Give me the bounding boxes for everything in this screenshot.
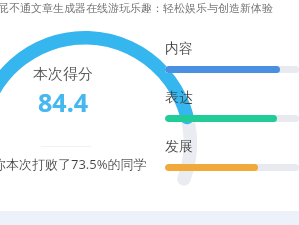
other: Score gauge 84.4 bbox=[0, 31, 151, 143]
button[interactable]: 内容 bbox=[165, 40, 299, 73]
button[interactable]: 表达 bbox=[165, 89, 299, 122]
staticText: 本次得分 bbox=[33, 65, 93, 84]
staticText: 84.4 bbox=[38, 85, 88, 119]
staticText: 内容 bbox=[165, 40, 193, 58]
staticText: 表达 bbox=[165, 89, 193, 107]
staticText: 狗屁不通文章生成器在线游玩乐趣：轻松娱乐与创造新体验 bbox=[0, 1, 273, 15]
staticText: 发展 bbox=[165, 138, 193, 156]
staticText: 你本次打败了73.5%的同学 bbox=[0, 155, 147, 173]
button[interactable]: 发展 bbox=[165, 138, 299, 171]
